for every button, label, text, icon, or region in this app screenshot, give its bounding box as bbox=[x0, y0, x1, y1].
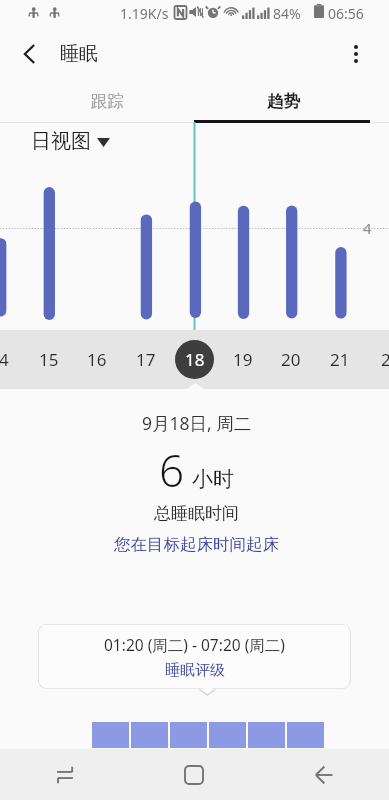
staticText: 您在目标起床时间起床 bbox=[114, 534, 279, 555]
button[interactable]: More options bbox=[338, 36, 374, 72]
staticText: 01:20 (周二) - 07:20 (周二) bbox=[104, 634, 285, 655]
staticText: 跟踪 bbox=[91, 91, 124, 112]
button[interactable]: 跟踪 bbox=[19, 78, 195, 123]
button[interactable]: Back bbox=[11, 36, 47, 72]
staticText: 9月18日, 周二 bbox=[142, 411, 252, 435]
staticText: 4 bbox=[363, 218, 372, 238]
staticText: 小时 bbox=[192, 466, 234, 492]
staticText: 84% bbox=[273, 4, 301, 23]
staticText: 19 bbox=[233, 348, 253, 371]
staticText: 总睡眠时间 bbox=[154, 503, 239, 524]
staticText: 20 bbox=[281, 348, 301, 371]
button[interactable]: 趋势 bbox=[195, 78, 371, 123]
staticText: 睡眠评级 bbox=[165, 661, 225, 680]
staticText: 16 bbox=[87, 348, 107, 371]
button[interactable]: Home bbox=[129, 749, 259, 800]
staticText: 4 bbox=[0, 348, 9, 371]
button[interactable]: Back bbox=[259, 749, 389, 800]
staticText: 21 bbox=[330, 348, 350, 371]
button[interactable]: 日视图 bbox=[31, 129, 110, 154]
staticText: 1.19K/s bbox=[120, 4, 169, 23]
staticText: 2 bbox=[381, 348, 389, 371]
staticText: 6 bbox=[159, 440, 185, 500]
staticText: 18 bbox=[185, 348, 205, 371]
staticText: 06:56 bbox=[328, 4, 364, 23]
staticText: 15 bbox=[39, 348, 59, 371]
staticText: 17 bbox=[136, 348, 156, 371]
button[interactable]: 18 bbox=[175, 340, 214, 379]
staticText: 日视图 bbox=[31, 129, 91, 154]
staticText: 睡眠 bbox=[60, 42, 98, 66]
staticText: 趋势 bbox=[267, 91, 300, 112]
button[interactable]: 01:20 (周二) - 07:20 (周二) bbox=[38, 624, 351, 689]
button[interactable]: Recent apps bbox=[0, 749, 129, 800]
